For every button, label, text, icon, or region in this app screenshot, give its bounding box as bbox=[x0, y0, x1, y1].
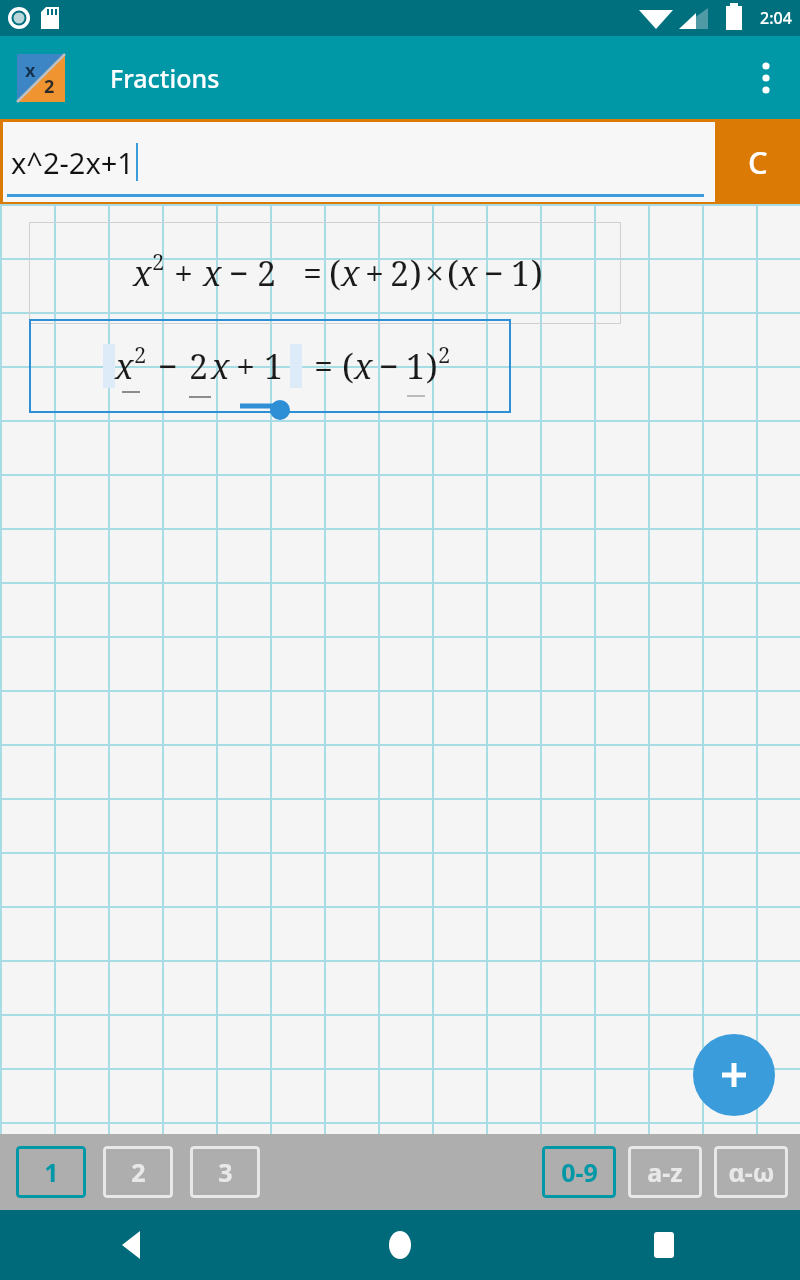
staticText: x bbox=[133, 250, 152, 296]
staticText: 1 bbox=[264, 343, 284, 389]
button[interactable]: 0-9 bbox=[542, 1146, 616, 1198]
staticText: ( bbox=[447, 250, 459, 296]
staticText: + bbox=[365, 250, 385, 296]
button[interactable]: 1 bbox=[16, 1146, 86, 1198]
staticText: x bbox=[25, 58, 36, 83]
staticText: 2 bbox=[131, 1155, 146, 1189]
staticText: α-ω bbox=[728, 1155, 775, 1189]
staticText: x bbox=[203, 250, 222, 296]
staticText: ( bbox=[342, 343, 354, 389]
staticText: 2 bbox=[438, 339, 451, 369]
button[interactable]: Recent apps bbox=[636, 1217, 692, 1273]
button[interactable]: x bbox=[29, 319, 511, 413]
staticText: x^2-2x+1 bbox=[11, 143, 134, 182]
staticText: ) bbox=[426, 343, 438, 389]
staticText: 2:04 bbox=[760, 7, 792, 29]
staticText: C bbox=[748, 141, 768, 183]
staticText: x bbox=[354, 343, 373, 389]
button[interactable]: 2 bbox=[103, 1146, 173, 1198]
staticText: − bbox=[379, 343, 399, 389]
button[interactable]: a-z bbox=[628, 1146, 702, 1198]
staticText: Fractions bbox=[110, 61, 220, 95]
button[interactable]: α-ω bbox=[714, 1146, 788, 1198]
button[interactable]: Home bbox=[372, 1217, 428, 1273]
staticText: ) bbox=[531, 250, 543, 296]
staticText: x bbox=[341, 250, 360, 296]
staticText: ( bbox=[329, 250, 341, 296]
staticText: 2 bbox=[390, 250, 410, 296]
staticText: x bbox=[211, 343, 230, 389]
staticText: 0-9 bbox=[561, 1155, 598, 1189]
staticText: × bbox=[425, 250, 445, 296]
staticText: a-z bbox=[647, 1155, 683, 1189]
staticText: x bbox=[115, 343, 134, 389]
staticText: 1 bbox=[44, 1155, 59, 1189]
button[interactable]: 3 bbox=[190, 1146, 260, 1198]
staticText: − bbox=[484, 250, 504, 296]
staticText: = bbox=[303, 250, 323, 296]
staticText: 2 bbox=[152, 246, 165, 276]
button[interactable]: C bbox=[715, 119, 800, 205]
button[interactable]: Back bbox=[104, 1217, 160, 1273]
staticText: 2 bbox=[44, 74, 55, 99]
staticText: 3 bbox=[218, 1155, 233, 1189]
button[interactable]: Add bbox=[693, 1034, 775, 1116]
button[interactable]: x bbox=[29, 222, 621, 324]
staticText: 1 bbox=[406, 343, 426, 389]
button[interactable]: x^2-2x+1 bbox=[3, 122, 715, 202]
staticText: 2 bbox=[134, 339, 147, 369]
staticText: 1 bbox=[511, 250, 531, 296]
staticText: x bbox=[459, 250, 478, 296]
staticText: + bbox=[174, 250, 194, 296]
button[interactable]: App icon bbox=[17, 54, 65, 102]
staticText: ) bbox=[410, 250, 422, 296]
staticText: 2 bbox=[257, 250, 277, 296]
button[interactable]: More options bbox=[742, 54, 790, 102]
staticText: + bbox=[236, 343, 256, 389]
staticText: − bbox=[229, 250, 249, 296]
staticText: 2 bbox=[189, 343, 209, 389]
staticText: = bbox=[314, 343, 334, 389]
staticText: − bbox=[158, 343, 178, 389]
